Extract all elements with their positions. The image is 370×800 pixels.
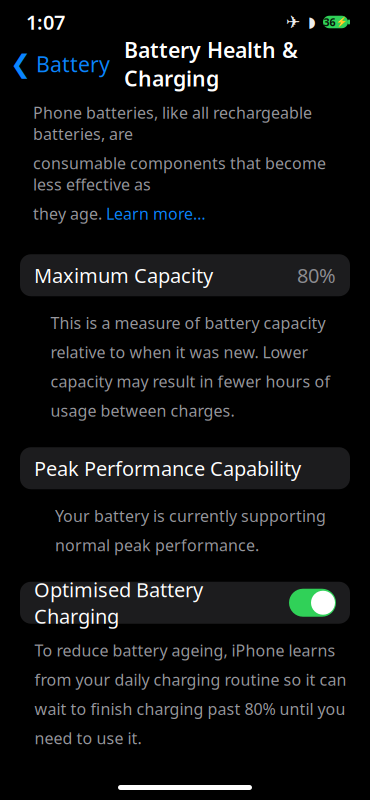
staticText: Maximum Capacity [34, 262, 213, 289]
staticText: ❮ [10, 50, 31, 78]
staticText: 1:07 [26, 9, 65, 35]
staticText: Optimised Battery Charging [34, 576, 203, 629]
staticText: ✈ [286, 12, 301, 32]
staticText: Battery [36, 50, 110, 78]
staticText: Your battery is currently supporting nor… [55, 505, 326, 556]
button[interactable]: Optimised Battery Charging [0, 582, 370, 624]
staticText: Battery Health & Charging [124, 36, 298, 92]
staticText: To reduce battery ageing, iPhone learns … [34, 640, 346, 749]
staticText: they age. [33, 203, 106, 224]
staticText: ⚡ [335, 17, 347, 27]
staticText: Learn more… [106, 203, 206, 224]
button[interactable]: Maximum Capacity [0, 254, 370, 296]
staticText: 36 [323, 15, 335, 29]
staticText: ◗ [308, 14, 316, 30]
staticText: Peak Performance Capability [34, 455, 301, 482]
staticText: 80% [297, 262, 336, 289]
staticText: Phone batteries, like all rechargeable b… [33, 102, 312, 144]
button[interactable]: Learn more… [106, 203, 206, 224]
staticText: This is a measure of battery capacity re… [50, 312, 330, 421]
button[interactable]: ❮ [0, 44, 118, 84]
button[interactable]: Peak Performance Capability [0, 447, 370, 489]
staticText: consumable components that become less e… [33, 152, 326, 195]
